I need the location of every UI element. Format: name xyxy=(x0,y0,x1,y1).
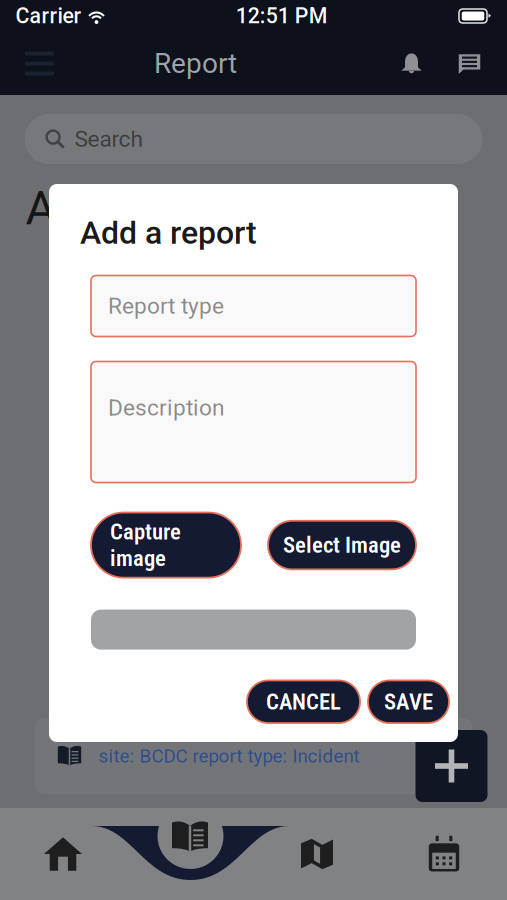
button[interactable]: CANCEL xyxy=(247,680,360,723)
staticText: 12:51 PM xyxy=(236,3,328,28)
staticText: SAVE xyxy=(384,688,433,715)
button[interactable]: Capture xyxy=(91,512,241,578)
staticText: Report type xyxy=(108,293,224,319)
button[interactable]: Select Image xyxy=(268,521,416,569)
staticText: All reports xyxy=(25,181,238,236)
staticText: Carrier xyxy=(15,3,81,28)
staticText: Capture xyxy=(110,518,181,545)
staticText: Description xyxy=(108,394,225,421)
button[interactable]: SAVE xyxy=(368,680,449,723)
button[interactable]: Home xyxy=(0,808,126,900)
button[interactable]: Reports xyxy=(126,808,253,900)
staticText: Select Image xyxy=(283,532,401,558)
staticText: site: BCDC report type: Incident xyxy=(98,745,359,767)
button[interactable]: Map xyxy=(253,808,380,900)
button[interactable]: Menu xyxy=(16,40,62,86)
staticText: Report xyxy=(154,47,237,80)
button[interactable]: Add report xyxy=(415,730,487,802)
staticText: Add a report xyxy=(80,214,257,251)
button[interactable]: Calendar xyxy=(380,808,507,900)
button[interactable]: Messages xyxy=(448,42,490,84)
staticText: CANCEL xyxy=(266,688,341,715)
button[interactable]: Notifications xyxy=(390,42,432,84)
staticText: Search xyxy=(74,126,142,152)
staticText: image xyxy=(110,545,166,572)
